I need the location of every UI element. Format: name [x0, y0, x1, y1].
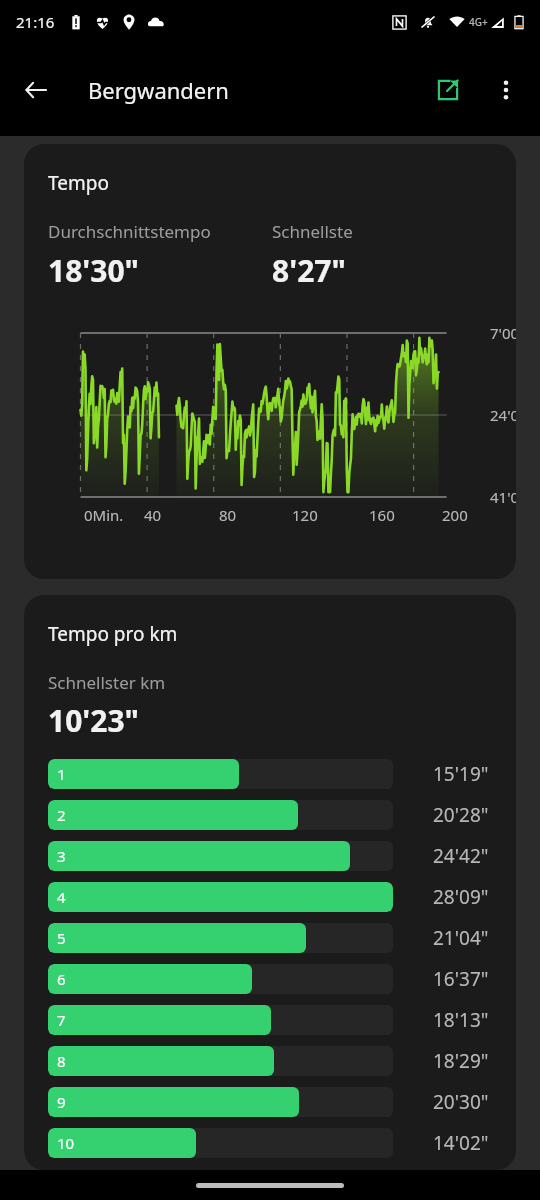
- staticText: 10'23": [48, 700, 139, 741]
- staticText: 21:16: [16, 12, 55, 32]
- staticText: Durchschnittstempo: [48, 220, 211, 243]
- button[interactable]: Back: [12, 66, 60, 114]
- staticText: 8: [57, 1051, 66, 1071]
- button[interactable]: 5: [24, 923, 516, 953]
- button[interactable]: 3: [24, 841, 516, 871]
- staticText: 16'37": [433, 966, 489, 992]
- staticText: 41'00: [490, 487, 516, 507]
- button[interactable]: Open in new: [424, 66, 472, 114]
- staticText: 4: [57, 887, 66, 907]
- staticText: 20'30": [433, 1089, 489, 1115]
- staticText: 24'42": [433, 843, 489, 869]
- staticText: 5: [57, 928, 66, 948]
- staticText: 10: [57, 1133, 75, 1153]
- staticText: 40: [144, 505, 162, 525]
- staticText: 7: [57, 1010, 66, 1030]
- button[interactable]: Tempo: [24, 144, 516, 579]
- button[interactable]: 4: [24, 882, 516, 912]
- staticText: 18'13": [433, 1007, 489, 1033]
- staticText: 18'29": [433, 1048, 489, 1074]
- button[interactable]: 1: [24, 759, 516, 789]
- staticText: 21'04": [433, 925, 489, 951]
- staticText: Bergwandern: [88, 75, 229, 105]
- staticText: 3: [57, 846, 66, 866]
- button[interactable]: 7: [24, 1005, 516, 1035]
- staticText: 20'28": [433, 802, 489, 828]
- staticText: 80: [219, 505, 237, 525]
- staticText: 200: [442, 505, 468, 525]
- staticText: 28'09": [433, 884, 489, 910]
- button[interactable]: 8: [24, 1046, 516, 1076]
- button[interactable]: 10: [24, 1128, 516, 1158]
- button[interactable]: Tempo pro km: [24, 595, 516, 1170]
- staticText: 7'00": [490, 323, 516, 343]
- button[interactable]: More options: [482, 66, 530, 114]
- staticText: 4G+: [469, 15, 488, 29]
- staticText: 0Min.: [84, 505, 124, 525]
- staticText: 160: [369, 505, 395, 525]
- staticText: 1: [57, 764, 66, 784]
- staticText: Schnellste: [272, 220, 353, 243]
- staticText: 2: [57, 805, 66, 825]
- staticText: 120: [292, 505, 318, 525]
- staticText: 6: [57, 969, 66, 989]
- staticText: 24'00: [490, 405, 516, 425]
- button[interactable]: 9: [24, 1087, 516, 1117]
- staticText: 15'19": [433, 761, 489, 787]
- button[interactable]: 6: [24, 964, 516, 994]
- staticText: 14'02": [433, 1130, 489, 1156]
- staticText: Tempo pro km: [48, 621, 178, 647]
- staticText: Tempo: [48, 170, 109, 196]
- staticText: 8'27": [272, 250, 346, 291]
- staticText: 9: [57, 1092, 66, 1112]
- staticText: 18'30": [48, 250, 139, 291]
- button[interactable]: 2: [24, 800, 516, 830]
- staticText: Schnellster km: [48, 671, 166, 694]
